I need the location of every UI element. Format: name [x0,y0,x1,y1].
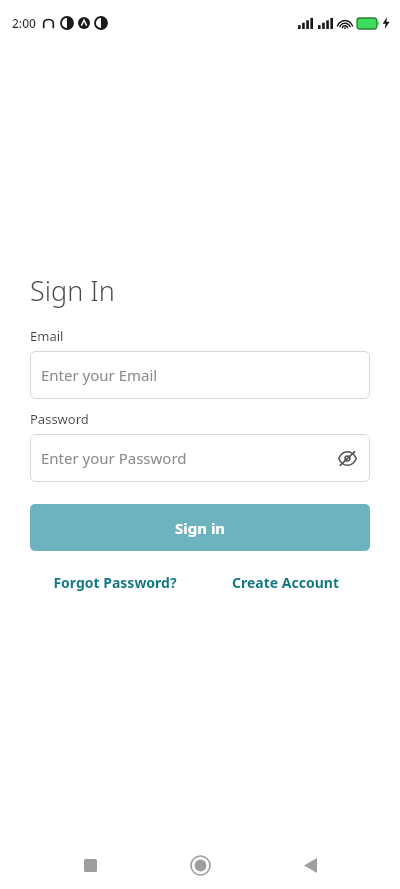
button[interactable]: Recent apps [70,845,110,885]
staticText: Forgot Password? [53,573,177,592]
button[interactable]: Create Account [200,573,370,592]
button[interactable]: Forgot Password? [30,573,200,592]
staticText: Password [30,410,89,428]
staticText: Email [30,327,64,345]
button[interactable]: Enter your Password [30,434,370,482]
staticText: Sign in [175,518,226,538]
button[interactable]: Back [290,845,330,885]
button[interactable]: Enter your Email [30,351,370,399]
staticText: Enter your Email [41,365,158,385]
staticText: Sign In [30,272,115,309]
button[interactable]: Home [180,845,220,885]
button[interactable]: Sign in [30,504,370,551]
button[interactable]: Show password [334,445,360,471]
staticText: Create Account [232,573,339,592]
staticText: 2:00 [12,15,36,31]
staticText: Enter your Password [41,448,187,468]
